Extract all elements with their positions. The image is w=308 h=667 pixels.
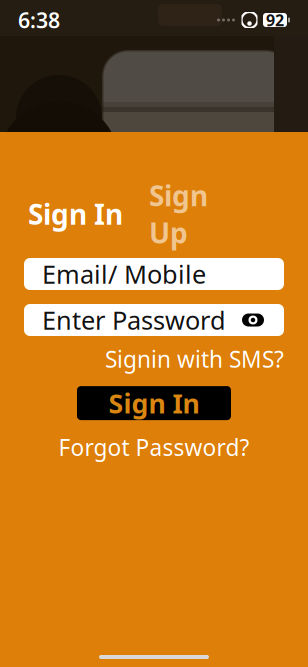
button[interactable]: Sign In [24, 194, 127, 234]
button[interactable]: Sign Up [127, 194, 230, 234]
staticText: 92 [266, 9, 284, 31]
staticText: Sign Up [149, 177, 208, 251]
button[interactable]: Forgot Password? [58, 432, 249, 462]
staticText: 6:38 [18, 6, 60, 34]
button[interactable]: Enter Password [24, 304, 284, 336]
staticText: Enter Password [42, 303, 226, 337]
staticText: Email/ Mobile [42, 257, 206, 291]
button[interactable]: Signin with SMS? [105, 344, 284, 374]
button[interactable]: Email/ Mobile [24, 258, 284, 290]
staticText: Sign In [28, 195, 123, 233]
staticText: Sign In [108, 385, 199, 421]
staticText: Forgot Password? [58, 432, 249, 462]
button[interactable]: Show password [240, 312, 266, 328]
button[interactable]: Sign In [77, 386, 231, 420]
staticText: Signin with SMS? [105, 344, 284, 374]
